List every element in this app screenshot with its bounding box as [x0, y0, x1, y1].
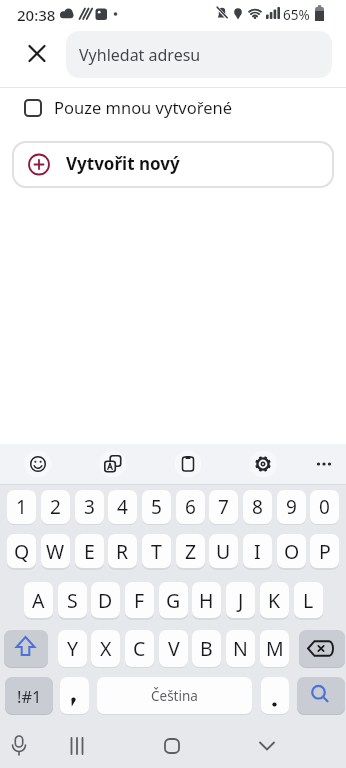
staticText: H: [199, 587, 214, 614]
staticText: M: [266, 635, 284, 662]
staticText: !#1: [17, 685, 42, 707]
staticText: 2: [50, 494, 61, 520]
staticText: P: [319, 538, 331, 565]
staticText: Čeština: [151, 687, 198, 705]
staticText: X: [100, 635, 112, 662]
staticText: 3: [84, 494, 95, 520]
staticText: V: [168, 635, 180, 662]
staticText: 6: [185, 494, 196, 520]
staticText: 4: [117, 494, 128, 520]
staticText: N: [233, 635, 248, 662]
staticText: 65%: [283, 6, 310, 24]
staticText: 0: [319, 494, 330, 520]
staticText: Vytvořit nový: [66, 152, 180, 175]
staticText: 8: [252, 494, 263, 520]
staticText: L: [303, 587, 314, 614]
staticText: G: [166, 587, 181, 614]
staticText: 20:38: [17, 5, 56, 25]
staticText: W: [46, 538, 65, 565]
staticText: S: [67, 587, 78, 614]
staticText: E: [84, 538, 95, 565]
staticText: Z: [185, 538, 197, 565]
staticText: A: [32, 587, 45, 614]
staticText: 1: [16, 494, 27, 520]
staticText: I: [254, 538, 261, 565]
staticText: F: [134, 587, 145, 614]
staticText: 9: [286, 494, 297, 520]
staticText: B: [200, 635, 213, 662]
staticText: O: [284, 538, 300, 565]
staticText: 7: [218, 494, 229, 520]
staticText: U: [216, 538, 231, 565]
staticText: Y: [67, 635, 79, 662]
staticText: 5: [151, 494, 162, 520]
staticText: C: [133, 635, 146, 662]
staticText: Vyhledat adresu: [79, 44, 201, 66]
staticText: R: [116, 538, 129, 565]
staticText: Q: [14, 538, 30, 565]
staticText: K: [268, 587, 281, 614]
staticText: D: [98, 587, 113, 614]
staticText: Pouze mnou vytvořené: [54, 96, 233, 118]
staticText: T: [151, 538, 162, 565]
staticText: J: [238, 587, 244, 614]
